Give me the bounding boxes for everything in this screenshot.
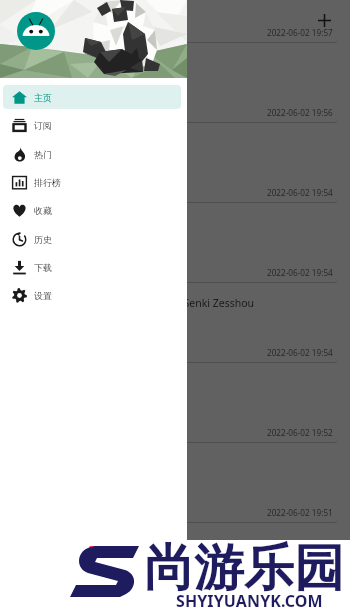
- staticText: 2022-06-02 19:52: [267, 427, 333, 438]
- button[interactable]: 主页: [3, 85, 181, 109]
- staticText: 2022-06-02 19:50: [267, 565, 333, 576]
- button[interactable]: 设置: [3, 283, 181, 307]
- button[interactable]: 订阅: [3, 113, 181, 137]
- staticText: Tokyo Revengers Shibuya District: [16, 136, 179, 150]
- staticText: 下载: [34, 262, 52, 273]
- staticText: 设置: [34, 290, 52, 301]
- button[interactable]: 收藏: [3, 198, 181, 222]
- staticText: 2022-06-02 19:54: [267, 187, 333, 198]
- button[interactable]: 历史: [3, 227, 181, 251]
- button[interactable]: Boku no Kokoro no Yabai Yatsu: [6, 0, 337, 42]
- staticText: 尚游乐园: [144, 537, 344, 600]
- staticText: 热门: [34, 149, 52, 160]
- staticText: Kobayashi-san chan keirei shasei (Senki …: [16, 296, 255, 310]
- button[interactable]: Kobayashi-san chan keirei shasei (Senki …: [6, 290, 337, 362]
- staticText: 2022-06-02 19:54: [267, 347, 333, 358]
- button[interactable]: Summertime Rendering Anime: [6, 450, 337, 522]
- staticText: SHYIYUANYK.COM: [176, 590, 323, 610]
- button[interactable]: Add: [306, 2, 342, 38]
- staticText: Yofukashi no Uta opening: [16, 536, 143, 550]
- staticText: Kanojo mo Kanojo yori: [16, 56, 128, 70]
- staticText: 排行榜: [34, 177, 61, 188]
- staticText: 2022-06-02 19:56: [267, 107, 333, 118]
- staticText: 收藏: [34, 205, 52, 216]
- staticText: 2022-06-02 19:51: [267, 507, 333, 518]
- staticText: 主页: [34, 92, 52, 103]
- staticText: 历史: [34, 234, 52, 245]
- staticText: 2022-06-02 19:54: [267, 267, 333, 278]
- button[interactable]: Don't toy with me everything: [6, 370, 337, 442]
- button[interactable]: 热门: [3, 142, 181, 166]
- staticText: 订阅: [34, 120, 52, 131]
- button[interactable]: 排行榜: [3, 170, 181, 194]
- button[interactable]: Yofukashi no Uta opening: [6, 530, 337, 580]
- button[interactable]: Kaguya-sama wa Kokurasetai: [6, 210, 337, 282]
- button[interactable]: 下载: [3, 255, 181, 279]
- staticText: 2022-06-02 19:57: [267, 27, 333, 38]
- button[interactable]: Kanojo mo Kanojo yori: [6, 50, 337, 122]
- button[interactable]: Tokyo Revengers Shibuya District: [6, 130, 337, 202]
